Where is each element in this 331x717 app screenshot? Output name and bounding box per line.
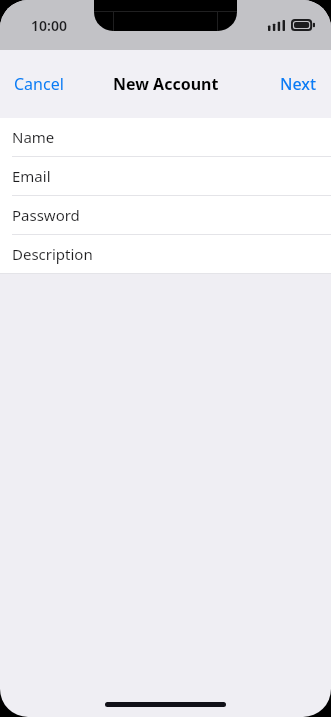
- other: Home indicator: [105, 702, 226, 707]
- staticText: Email: [12, 166, 51, 186]
- staticText: Description: [12, 244, 93, 264]
- staticText: Cancel: [14, 73, 64, 95]
- button[interactable]: Email: [0, 157, 331, 196]
- staticText: Name: [12, 127, 55, 147]
- button[interactable]: Next: [266, 63, 331, 105]
- button[interactable]: Name: [0, 118, 331, 157]
- staticText: Next: [280, 73, 317, 95]
- staticText: New Account: [113, 73, 219, 95]
- button[interactable]: Password: [0, 196, 331, 235]
- button[interactable]: Description: [0, 235, 331, 273]
- staticText: Password: [12, 205, 80, 225]
- staticText: 10:00: [31, 16, 67, 35]
- button[interactable]: Cancel: [0, 63, 78, 105]
